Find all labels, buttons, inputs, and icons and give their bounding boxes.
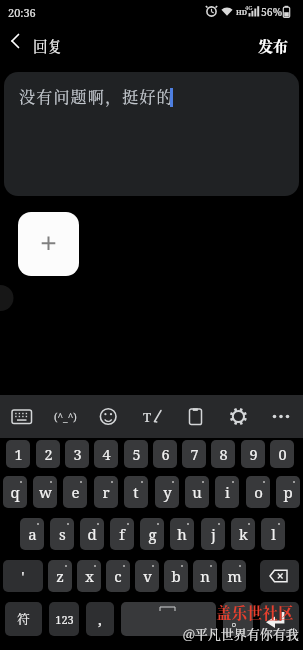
button[interactable]: q (3, 476, 27, 508)
button[interactable]: p (276, 476, 300, 508)
staticText: 20:36 (8, 5, 36, 20)
button[interactable]: y (155, 476, 179, 508)
button[interactable]: u (185, 476, 209, 508)
button[interactable]: 9 (241, 440, 265, 468)
staticText: 8 (219, 444, 228, 464)
staticText: 。 (231, 610, 245, 629)
button[interactable]: o (246, 476, 270, 508)
staticText: 123 (55, 612, 74, 627)
staticText: , (98, 609, 102, 629)
staticText: o (254, 482, 263, 502)
staticText: 2 (44, 444, 53, 464)
button[interactable]: f (110, 518, 134, 550)
button[interactable] (130, 395, 173, 438)
button[interactable]: s (50, 518, 74, 550)
button[interactable]: 4 (94, 440, 118, 468)
button[interactable] (87, 395, 130, 438)
staticText: 5 (132, 444, 141, 464)
button[interactable]: 6 (153, 440, 177, 468)
staticText: d (87, 524, 97, 544)
staticText: ' (21, 566, 25, 586)
staticText: m (227, 566, 242, 586)
button[interactable]: d (80, 518, 104, 550)
staticText: 56% (261, 5, 283, 19)
button[interactable]: h (170, 518, 194, 550)
button[interactable]: k (231, 518, 255, 550)
button[interactable]: ' (3, 560, 43, 592)
button[interactable]: t (124, 476, 148, 508)
staticText: u (192, 482, 202, 502)
staticText: g (148, 524, 157, 544)
button[interactable]: 发布 (250, 29, 298, 59)
staticText: 7 (190, 444, 199, 464)
button[interactable] (173, 395, 216, 438)
staticText: 4G (245, 4, 253, 12)
button[interactable]: 1 (6, 440, 30, 468)
staticText: HD (236, 8, 248, 18)
button[interactable]: 没有问题啊，挺好的 (4, 72, 299, 196)
staticText: f (119, 524, 125, 544)
staticText: 回复 (33, 35, 62, 56)
button[interactable]: m (222, 560, 246, 592)
button[interactable]: x (77, 560, 101, 592)
button[interactable]: g (140, 518, 164, 550)
staticText: 发布 (258, 35, 289, 57)
button[interactable]: a (20, 518, 44, 550)
staticText: i (225, 482, 230, 502)
button[interactable]: c (106, 560, 130, 592)
staticText: t (133, 482, 139, 502)
button[interactable]: n (193, 560, 217, 592)
staticText: p (283, 482, 293, 502)
button[interactable]: w (33, 476, 57, 508)
button[interactable] (43, 395, 86, 438)
button[interactable]: 8 (211, 440, 235, 468)
button[interactable]: 符 (5, 602, 42, 636)
staticText: 3 (73, 444, 82, 464)
staticText: 符 (17, 610, 30, 628)
button[interactable]: e (63, 476, 87, 508)
staticText: @平凡世界有你有我 (183, 624, 299, 643)
button[interactable]: z (48, 560, 72, 592)
staticText: 没有问题啊，挺好的 (19, 85, 174, 108)
staticText: w (39, 482, 52, 502)
staticText: j (211, 524, 216, 544)
staticText: T (143, 408, 152, 426)
button[interactable] (0, 395, 43, 438)
staticText: n (200, 566, 210, 586)
staticText: r (102, 482, 110, 502)
button[interactable] (260, 395, 303, 438)
staticText: y (163, 482, 172, 502)
staticText: a (28, 524, 37, 544)
staticText: v (143, 566, 152, 586)
button[interactable]: b (164, 560, 188, 592)
button[interactable] (260, 602, 299, 636)
button[interactable]: 123 (49, 602, 79, 636)
staticText: e (71, 482, 80, 502)
button[interactable]: l (261, 518, 285, 550)
button[interactable] (121, 602, 216, 636)
button[interactable]: v (135, 560, 159, 592)
staticText: h (177, 524, 187, 544)
staticText: 0 (278, 444, 287, 464)
staticText: 6 (161, 444, 170, 464)
button[interactable] (216, 395, 259, 438)
button[interactable]: i (215, 476, 239, 508)
button[interactable] (260, 560, 299, 592)
button[interactable]: 3 (65, 440, 89, 468)
staticText: 盖乐世社区 (216, 601, 294, 623)
staticText: l (271, 524, 276, 544)
button[interactable]: 5 (124, 440, 148, 468)
button[interactable] (18, 212, 79, 276)
button[interactable]: 0 (270, 440, 294, 468)
staticText: x (85, 566, 94, 586)
button[interactable]: , (86, 602, 114, 636)
staticText: 4 (102, 444, 111, 464)
button[interactable]: r (94, 476, 118, 508)
button[interactable] (0, 28, 32, 60)
staticText: c (114, 566, 122, 586)
button[interactable]: 2 (36, 440, 60, 468)
button[interactable]: 7 (182, 440, 206, 468)
staticText: 1 (14, 444, 23, 464)
button[interactable]: 。 (223, 602, 253, 636)
button[interactable]: j (201, 518, 225, 550)
